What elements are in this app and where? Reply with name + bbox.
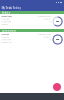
staticText: Due today — [1, 24, 8, 25]
staticText: Tomorrow — [1, 29, 15, 32]
staticText: Due tomorrow — [1, 42, 11, 43]
staticText: Assigned to me — [1, 21, 11, 23]
staticText: Project Beta — [1, 36, 9, 38]
staticText: Last updated 1d ago — [37, 34, 51, 35]
staticText: 0% — [49, 21, 51, 23]
staticText: Today — [1, 11, 9, 14]
button[interactable]: Sprint plan — [0, 32, 64, 47]
staticText: Design review — [1, 16, 11, 17]
button[interactable]: New task — [53, 83, 61, 91]
staticText: Project Alpha — [1, 18, 10, 20]
staticText: 4 subtasks — [43, 18, 51, 20]
staticText: Assigned to me — [1, 39, 11, 41]
staticText: 3 subtasks — [43, 36, 51, 38]
staticText: My Tasks Today — [1, 6, 20, 10]
staticText: Sprint plan — [1, 34, 9, 35]
staticText: Last updated 2h ago — [37, 16, 51, 17]
button[interactable]: Design review — [0, 14, 64, 29]
staticText: 0% — [49, 39, 51, 41]
